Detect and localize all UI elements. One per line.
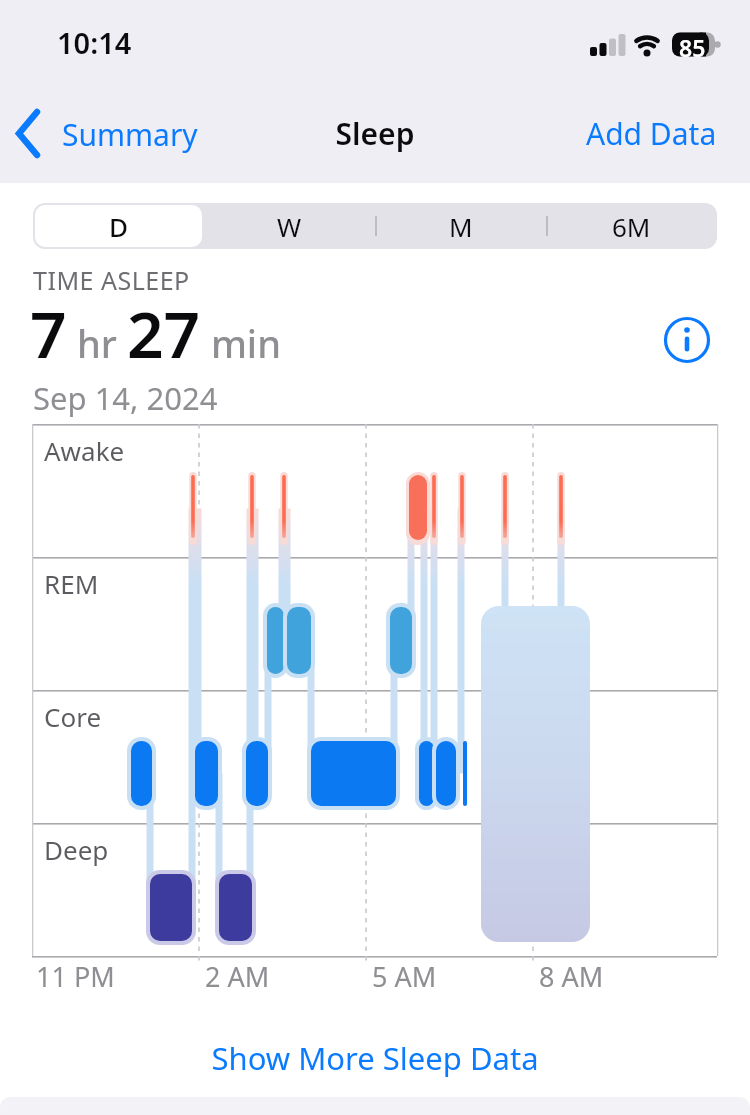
staticText: 7 — [30, 290, 67, 377]
button[interactable]: W — [204, 203, 375, 249]
button[interactable]: 6M — [546, 203, 717, 249]
staticText: 2 AM — [205, 958, 270, 995]
staticText: min — [201, 317, 281, 369]
staticText: D — [109, 209, 129, 244]
staticText: 11 PM — [36, 958, 115, 995]
staticText: TIME ASLEEP — [33, 263, 190, 297]
staticText: 27 — [127, 290, 201, 377]
staticText: hr — [67, 317, 127, 369]
button[interactable]: Show More Sleep Data — [0, 1037, 750, 1079]
staticText: M — [449, 209, 473, 244]
staticText: 85 — [679, 32, 706, 63]
staticText: 6M — [612, 209, 651, 244]
button[interactable]: D — [35, 205, 202, 247]
staticText: Deep — [44, 832, 109, 867]
button[interactable] — [663, 316, 711, 364]
button[interactable]: Add Data — [586, 113, 717, 154]
staticText: Awake — [44, 433, 125, 468]
staticText: Sep 14, 2024 — [33, 377, 218, 419]
staticText: 8 AM — [539, 958, 604, 995]
button[interactable]: Summary — [16, 112, 198, 156]
staticText: REM — [44, 566, 99, 601]
staticText: Summary — [62, 114, 198, 155]
button[interactable]: M — [375, 203, 546, 249]
staticText: Sleep — [0, 113, 750, 154]
staticText: 10:14 — [57, 23, 132, 62]
staticText: W — [277, 209, 302, 244]
staticText: 5 AM — [372, 958, 437, 995]
staticText: Core — [44, 699, 102, 734]
